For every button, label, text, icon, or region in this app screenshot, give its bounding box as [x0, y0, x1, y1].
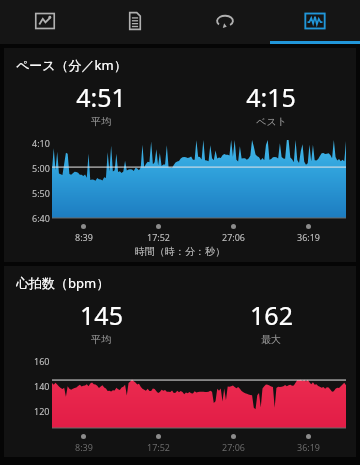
staticText: 17:52 [147, 441, 171, 453]
staticText: 36:19 [297, 441, 321, 453]
staticText: 140 [34, 380, 50, 392]
button[interactable]: Map [0, 0, 90, 41]
button[interactable]: Charts [270, 0, 360, 41]
staticText: 162 [250, 298, 293, 332]
staticText: 最大 [261, 333, 281, 346]
staticText: 27:06 [222, 231, 246, 243]
staticText: 17:52 [147, 231, 171, 243]
button[interactable]: 心拍数（bpm） [4, 266, 356, 457]
staticText: 145 [80, 298, 123, 332]
staticText: 5:50 [32, 187, 50, 199]
staticText: ベスト [256, 115, 287, 128]
staticText: 平均 [91, 333, 111, 346]
staticText: 8:39 [75, 441, 93, 453]
staticText: 4:10 [32, 137, 50, 149]
staticText: 平均 [91, 115, 111, 128]
staticText: 5:00 [32, 162, 50, 174]
staticText: 27:06 [222, 441, 246, 453]
staticText: 160 [34, 355, 50, 367]
staticText: 4:51 [76, 80, 126, 114]
staticText: 36:19 [297, 231, 321, 243]
staticText: ペース（分／km） [16, 56, 127, 74]
staticText: 時間（時：分：秒） [16, 245, 344, 258]
button[interactable]: ペース（分／km） [4, 48, 356, 262]
staticText: 8:39 [75, 231, 93, 243]
button[interactable]: Laps [180, 0, 270, 41]
staticText: 心拍数（bpm） [16, 274, 110, 292]
button[interactable]: Details [90, 0, 180, 41]
staticText: 6:40 [32, 212, 50, 222]
staticText: 120 [34, 405, 50, 417]
staticText: 4:15 [246, 80, 296, 114]
